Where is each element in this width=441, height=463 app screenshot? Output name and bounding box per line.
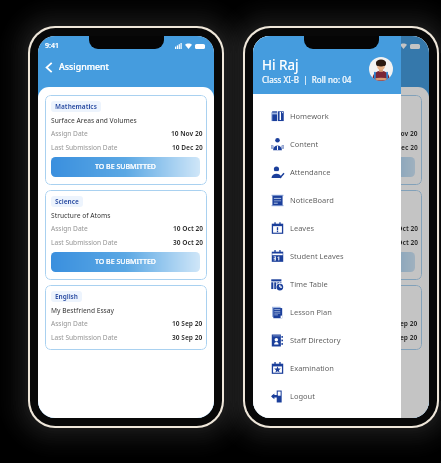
button[interactable]: Back [257, 60, 271, 74]
staticText: Last Submission Date [51, 143, 118, 152]
staticText: Last Submission Date [266, 143, 333, 152]
staticText: Surface Areas and Volumes [51, 116, 137, 125]
button[interactable]: TO BE SUBMITTED [51, 252, 200, 272]
staticText: 30 Oct 20 [173, 238, 203, 247]
button[interactable]: Examination [253, 354, 401, 382]
staticText: Content [290, 139, 319, 149]
staticText: Last Submission Date [266, 333, 333, 342]
staticText: Assign Date [51, 129, 88, 138]
staticText: Structure of Atoms [51, 211, 111, 220]
staticText: Time Table [290, 279, 328, 289]
staticText: 10 Nov 20 [386, 129, 418, 138]
staticText: Hi Raj [262, 56, 299, 74]
staticText: Mathematics [55, 102, 97, 111]
staticText: My Bestfriend Essay [51, 306, 115, 315]
button[interactable]: English [260, 285, 422, 350]
staticText: Assignment [59, 61, 109, 73]
button[interactable]: Mathematics [45, 95, 207, 185]
button[interactable]: TO BE SUBMITTED [51, 157, 200, 177]
staticText: 10 Dec 20 [387, 143, 418, 152]
button[interactable]: TO BE SUBMITTED [266, 252, 415, 272]
button[interactable]: Lesson Plan [253, 298, 401, 326]
button[interactable]: TO BE SUBMITTED [266, 157, 415, 177]
staticText: 30 Sep 20 [387, 333, 418, 342]
button[interactable]: English [45, 285, 207, 350]
staticText: Assign Date [51, 224, 88, 233]
button[interactable]: Leaves [253, 214, 401, 242]
staticText: 10 Oct 20 [173, 224, 203, 233]
button[interactable]: NoticeBoard [253, 186, 401, 214]
button[interactable]: Back [42, 60, 56, 74]
staticText: 30 Oct 20 [388, 238, 418, 247]
staticText: Science [270, 197, 294, 206]
staticText: 10 Sep 20 [172, 319, 203, 328]
staticText: Homework [290, 111, 329, 121]
staticText: TO BE SUBMITTED [95, 162, 156, 172]
staticText: TO BE SUBMITTED [310, 162, 371, 172]
staticText: 30 Sep 20 [172, 333, 203, 342]
button[interactable]: Content [253, 130, 401, 158]
staticText: Assignment [274, 61, 324, 73]
staticText: Science [55, 197, 79, 206]
staticText: Examination [290, 363, 334, 373]
staticText: Surface Areas and Volumes [266, 116, 352, 125]
staticText: Staff Directory [290, 335, 341, 345]
staticText: Leaves [290, 223, 314, 233]
staticText: TO BE SUBMITTED [310, 257, 371, 267]
staticText: Last Submission Date [51, 333, 118, 342]
button[interactable]: Staff Directory [253, 326, 401, 354]
staticText: Assign Date [266, 224, 303, 233]
button[interactable]: Attendance [253, 158, 401, 186]
button[interactable]: Science [260, 190, 422, 280]
staticText: 9:41 [45, 41, 59, 51]
staticText: NoticeBoard [290, 195, 334, 205]
button[interactable]: Logout [253, 382, 401, 410]
staticText: Class XI-B | Roll no: 04 [262, 74, 352, 85]
button[interactable]: Time Table [253, 270, 401, 298]
staticText: TO BE SUBMITTED [95, 257, 156, 267]
staticText: Attendance [290, 167, 331, 177]
staticText: 10 Nov 20 [171, 129, 203, 138]
staticText: 10 Sep 20 [387, 319, 418, 328]
staticText: Lesson Plan [290, 307, 332, 317]
staticText: My Bestfriend Essay [266, 306, 330, 315]
staticText: Student Leaves [290, 251, 344, 261]
staticText: 10 Dec 20 [172, 143, 203, 152]
staticText: Logout [290, 391, 315, 401]
staticText: Assign Date [51, 319, 88, 328]
button[interactable]: Mathematics [260, 95, 422, 185]
staticText: English [55, 292, 78, 301]
staticText: Last Submission Date [51, 238, 118, 247]
button[interactable]: Student Leaves [253, 242, 401, 270]
button[interactable]: Science [45, 190, 207, 280]
button[interactable]: Homework [253, 102, 401, 130]
staticText: 10 Oct 20 [388, 224, 418, 233]
